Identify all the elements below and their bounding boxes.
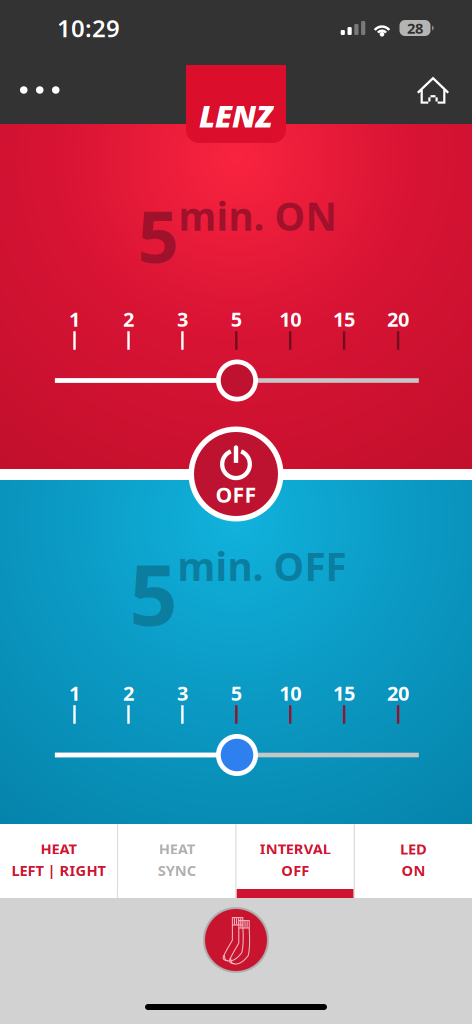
staticText: ON — [401, 860, 425, 880]
staticText: LENZ — [199, 95, 273, 136]
staticText: 20 — [387, 680, 409, 706]
staticText: 2 — [123, 680, 134, 706]
staticText: 28 — [407, 18, 423, 38]
staticText: min. ON — [178, 190, 336, 241]
staticText: 20 — [387, 306, 409, 332]
staticText: 5 — [129, 537, 177, 649]
staticText: min. OFF — [177, 540, 346, 591]
staticText: INTERVAL — [260, 839, 331, 858]
staticText: 3 — [177, 680, 188, 706]
staticText: 10 — [279, 306, 301, 332]
staticText: OFF — [281, 860, 309, 880]
staticText: 15 — [333, 680, 355, 706]
staticText: 1 — [69, 680, 80, 706]
button[interactable]: HEAT — [0, 824, 117, 898]
staticText: 10 — [279, 680, 301, 706]
staticText: 1 — [69, 306, 80, 332]
staticText: 5 — [137, 187, 178, 283]
staticText: HEAT — [40, 839, 76, 858]
button[interactable]: Power, currently off — [188, 426, 283, 521]
button[interactable]: LED — [355, 824, 472, 898]
staticText: OFF — [215, 480, 256, 509]
staticText: LEFT | RIGHT — [11, 860, 105, 880]
button[interactable]: Socks device — [203, 907, 269, 973]
button[interactable]: More options — [0, 56, 95, 124]
button[interactable]: INTERVAL — [237, 824, 354, 898]
button[interactable]: Home — [377, 56, 472, 124]
staticText: 15 — [333, 306, 355, 332]
staticText: SYNC — [158, 860, 196, 880]
staticText: 5 — [231, 306, 242, 332]
button[interactable]: HEAT — [118, 824, 235, 898]
staticText: 3 — [177, 306, 188, 332]
staticText: LED — [400, 839, 427, 858]
staticText: 10:29 — [57, 12, 120, 44]
staticText: 2 — [123, 306, 134, 332]
staticText: 5 — [231, 680, 242, 706]
staticText: HEAT — [159, 839, 195, 858]
